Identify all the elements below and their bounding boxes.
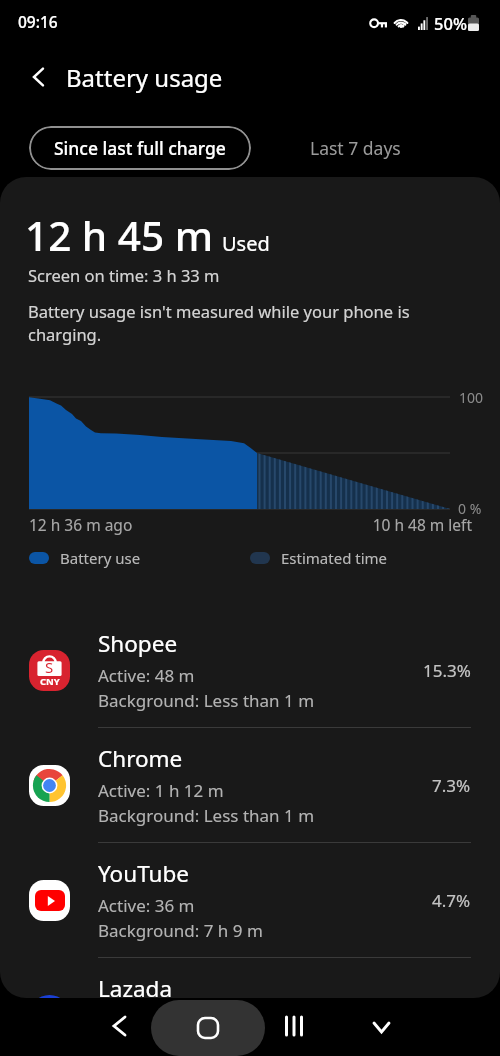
staticText: 12 h 45 m [25, 208, 214, 263]
staticText: 100 [459, 388, 484, 407]
staticText: Since last full charge [54, 136, 226, 160]
staticText: Shopee [98, 628, 178, 659]
staticText: 7.3% [432, 774, 471, 797]
staticText: Chrome [98, 743, 183, 774]
staticText: Background: Less than 1 m [98, 804, 315, 827]
button[interactable]: Hide keyboard [357, 1003, 405, 1051]
button[interactable]: YouTube [0, 843, 500, 957]
staticText: Last 7 days [310, 136, 401, 160]
staticText: 4.7% [432, 889, 471, 912]
button[interactable]: Lazada [0, 958, 500, 998]
staticText: Battery usage isn't measured while your … [28, 300, 410, 346]
button[interactable]: Home [151, 1000, 265, 1056]
staticText: Estimated time [281, 548, 388, 568]
staticText: Active: 36 m [98, 894, 195, 917]
staticText: S [45, 657, 54, 677]
staticText: 09:16 [18, 11, 58, 32]
button[interactable]: Since last full charge [29, 126, 251, 170]
staticText: Battery use [60, 548, 141, 568]
staticText: CNY [40, 675, 60, 688]
staticText: Screen on time: 3 h 33 m [28, 264, 220, 286]
staticText: 15.3% [423, 659, 471, 682]
button[interactable]: S [0, 613, 500, 727]
staticText: YouTube [98, 858, 189, 889]
staticText: Active: 48 m [98, 664, 195, 687]
button[interactable]: Last 7 days [280, 126, 440, 170]
staticText: 12 h 36 m ago [29, 514, 133, 535]
staticText: Battery usage [66, 61, 223, 94]
staticText: 50% [434, 12, 467, 34]
staticText: Background: 7 h 9 m [98, 919, 263, 942]
button[interactable]: Back [95, 1002, 143, 1050]
button[interactable]: Back [16, 54, 62, 100]
staticText: Used [222, 230, 270, 257]
staticText: Background: Less than 1 m [98, 689, 315, 712]
button[interactable]: Chrome [0, 728, 500, 842]
staticText: 10 h 48 m left [310, 514, 472, 535]
staticText: 0 % [458, 499, 482, 518]
staticText: Lazada [98, 973, 173, 998]
button[interactable]: Recents [270, 1002, 318, 1050]
staticText: Active: 1 h 12 m [98, 779, 224, 802]
